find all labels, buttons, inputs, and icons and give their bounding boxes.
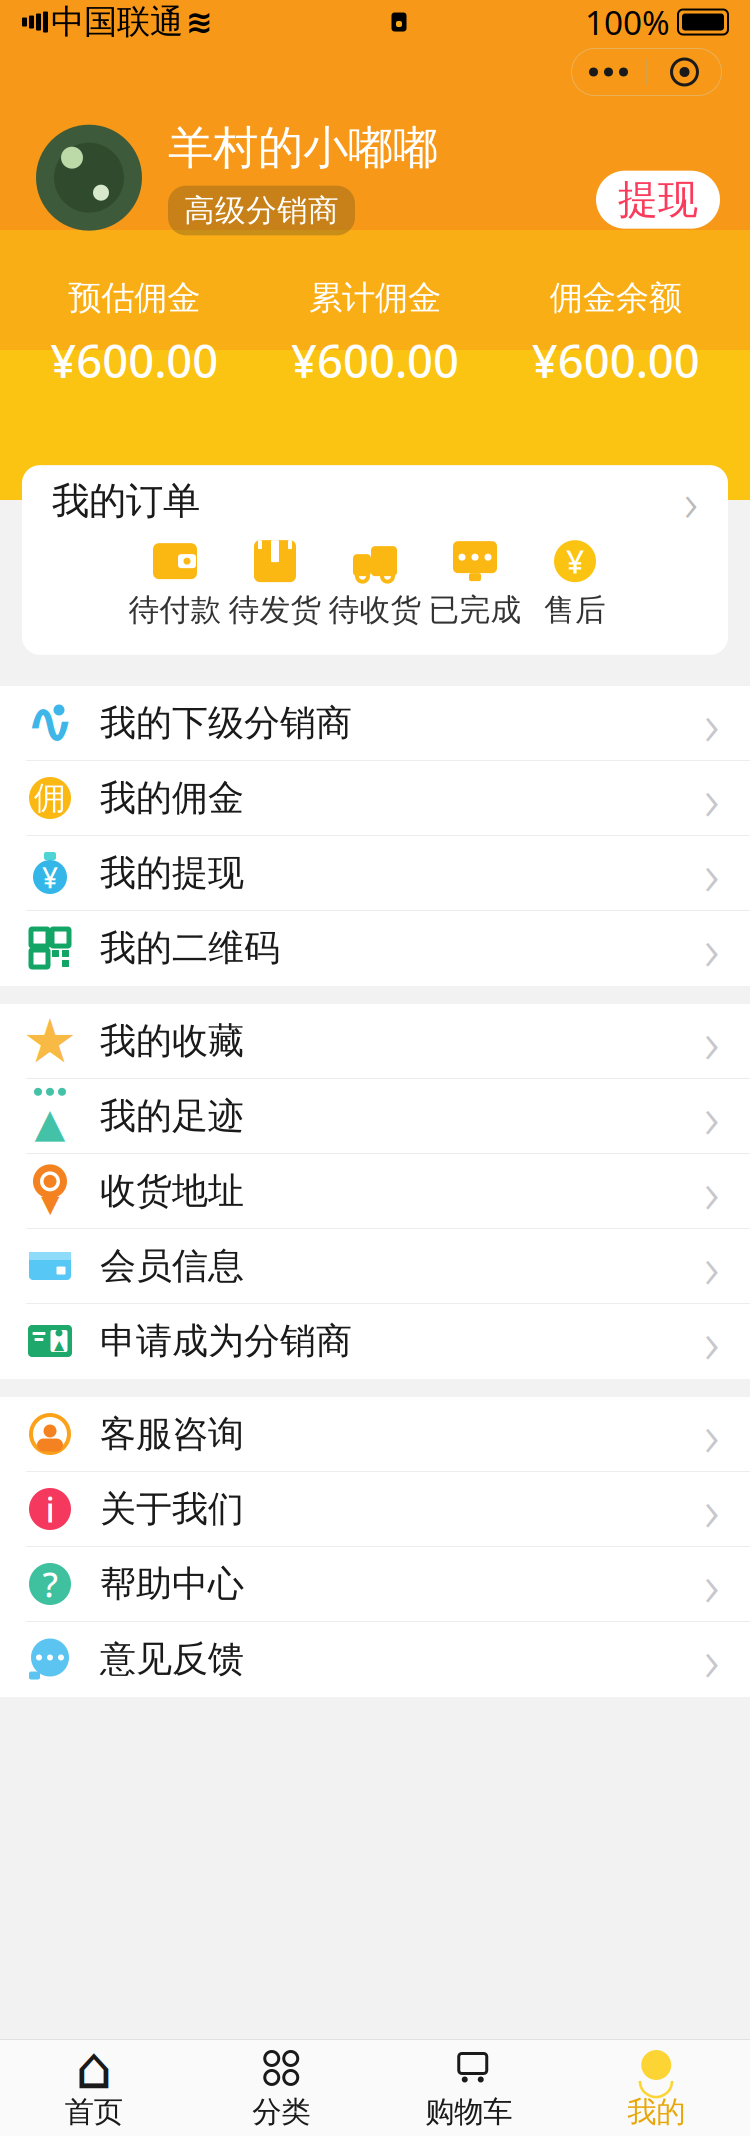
staticText: 我的提现 [100, 851, 244, 895]
staticText: › [704, 1545, 720, 1623]
staticText: › [704, 1077, 720, 1155]
button[interactable]: 分类 [187, 2040, 375, 2136]
staticText: ◡ [639, 2051, 674, 2103]
staticText: 客服咨询 [100, 1412, 244, 1456]
button[interactable]: 我的二维码 [0, 911, 750, 986]
button[interactable]: i [0, 1472, 750, 1547]
staticText: 提现 [618, 175, 698, 224]
staticText: 会员信息 [100, 1244, 244, 1288]
staticText: 待收货 [328, 591, 421, 629]
button[interactable]: ? [0, 1547, 750, 1622]
staticText: 待发货 [228, 591, 321, 629]
button[interactable]: ¥ [0, 836, 750, 911]
staticText: › [704, 909, 720, 987]
staticText: ▲ [34, 1100, 65, 1146]
staticText: › [704, 759, 720, 837]
staticText: › [704, 1002, 720, 1080]
button[interactable]: Close [647, 48, 722, 96]
button[interactable]: 客服咨询 [0, 1397, 750, 1472]
button[interactable]: 会员信息 [0, 1229, 750, 1304]
button[interactable]: 意见反馈 [0, 1622, 750, 1697]
staticText: 我的 [627, 2094, 685, 2130]
staticText: 我的下级分销商 [100, 701, 352, 745]
staticText: ≋ [186, 4, 213, 40]
staticText: ∿ [25, 690, 74, 756]
button[interactable]: 已完成 [425, 537, 525, 629]
staticText: ▲ [54, 1337, 64, 1352]
staticText: ¥ [42, 859, 58, 896]
staticText: ★ [22, 1006, 77, 1076]
button[interactable]: 待付款 [125, 537, 225, 629]
staticText: 首页 [65, 2094, 123, 2130]
staticText: 关于我们 [100, 1487, 244, 1531]
staticText: 收货地址 [100, 1169, 244, 1213]
staticText: 购物车 [425, 2094, 512, 2130]
staticText: 分类 [252, 2094, 310, 2130]
staticText: 售后 [544, 591, 606, 629]
button[interactable]: 我的订单 [22, 465, 728, 537]
staticText: 佣金余额 [550, 277, 682, 318]
button[interactable]: ▲ [0, 1304, 750, 1379]
button[interactable]: More [571, 48, 646, 96]
staticText: 中国联通 [51, 1, 183, 42]
staticText: 我的收藏 [100, 1019, 244, 1063]
button[interactable]: ¥ [525, 537, 625, 629]
staticText: 待付款 [128, 591, 221, 629]
button[interactable]: 待发货 [225, 537, 325, 629]
staticText: 佣 [34, 778, 66, 818]
staticText: 预估佣金 [68, 277, 200, 318]
staticText: ¥ [566, 540, 584, 582]
staticText: ¥600.00 [291, 330, 459, 390]
staticText: 我的二维码 [100, 926, 280, 970]
staticText: 已完成 [428, 591, 521, 629]
button[interactable]: 提现 [596, 171, 720, 229]
staticText: › [704, 1227, 720, 1305]
staticText: › [704, 834, 720, 912]
button[interactable]: 购物车 [375, 2040, 562, 2136]
button[interactable]: ▲ [0, 1079, 750, 1154]
button[interactable]: 待收货 [325, 537, 425, 629]
staticText: 我的足迹 [100, 1094, 244, 1138]
staticText: ¥600.00 [50, 330, 218, 390]
staticText: 累计佣金 [309, 277, 441, 318]
staticText: ▼ [41, 1190, 59, 1218]
button[interactable]: ∿ [0, 686, 750, 761]
staticText: › [704, 1620, 720, 1698]
staticText: 我的订单 [52, 478, 200, 524]
button[interactable]: ▼ [0, 1154, 750, 1229]
staticText: i [45, 1486, 54, 1532]
staticText: ? [42, 1561, 57, 1607]
button[interactable]: 佣 [0, 761, 750, 836]
staticText: › [704, 1395, 720, 1473]
staticText: 意见反馈 [100, 1637, 244, 1681]
staticText: 100% [585, 0, 670, 44]
button[interactable]: ⌂ [0, 2040, 187, 2136]
staticText: ¥600.00 [532, 330, 700, 390]
staticText: 帮助中心 [100, 1562, 244, 1606]
staticText: › [684, 466, 698, 537]
staticText: › [704, 1152, 720, 1230]
staticText: 高级分销商 [184, 192, 339, 229]
button[interactable]: ★ [0, 1004, 750, 1079]
button[interactable]: ◡ [562, 2040, 750, 2136]
staticText: › [704, 1470, 720, 1548]
staticText: › [704, 1302, 720, 1380]
staticText: 羊村的小嘟嘟 [168, 120, 438, 176]
staticText: 申请成为分销商 [100, 1319, 352, 1363]
staticText: ⌂ [75, 2035, 112, 2101]
staticText: › [704, 684, 720, 762]
staticText: 我的佣金 [100, 776, 244, 820]
